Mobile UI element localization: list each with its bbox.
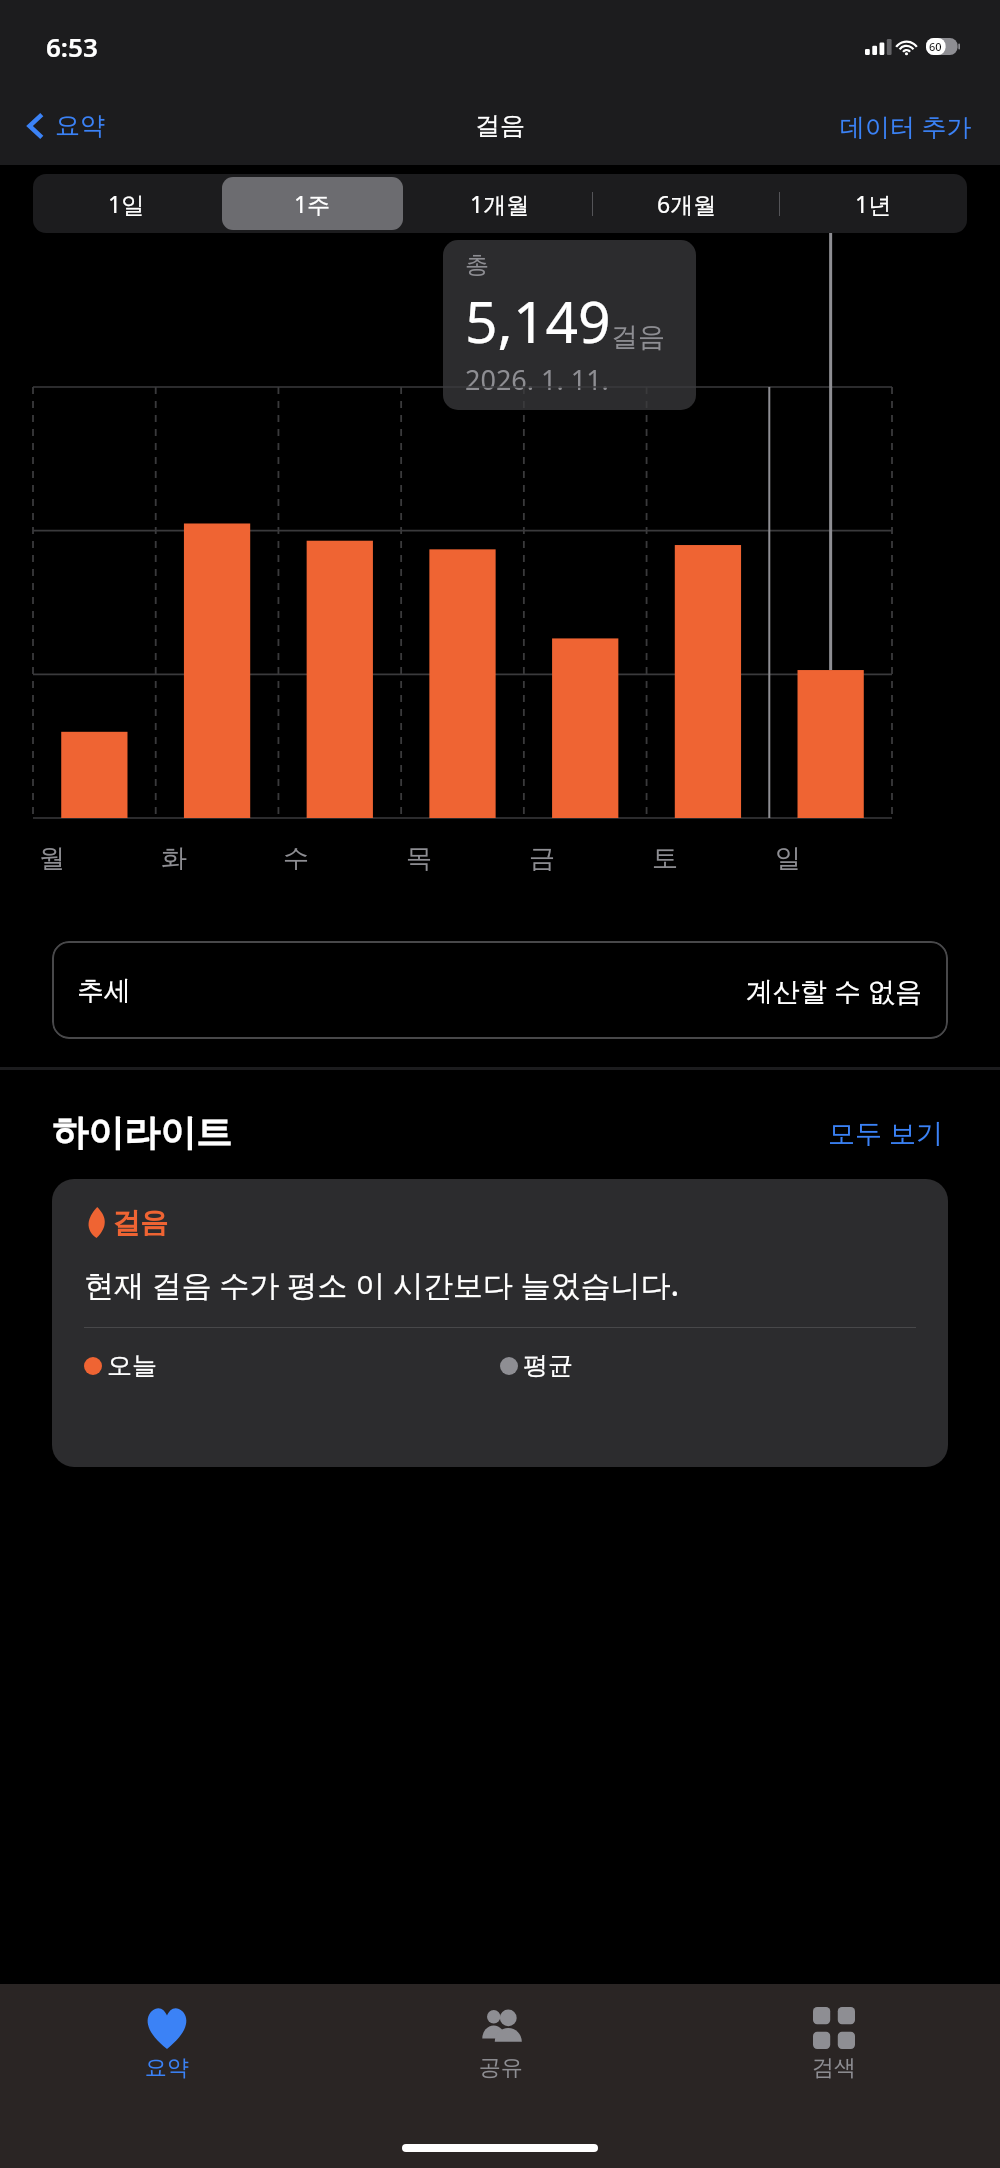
button[interactable]: 요약 [0, 2000, 334, 2088]
staticText: 1일 [108, 188, 145, 219]
staticText: 평균 [523, 1350, 573, 1381]
button[interactable]: 1주 [222, 177, 403, 230]
staticText: 수 [283, 842, 309, 875]
staticText: 요약 [145, 2054, 189, 2082]
staticText: 6개월 [657, 188, 717, 219]
button[interactable]: 추세 [52, 941, 948, 1039]
staticText: 공유 [479, 2054, 523, 2082]
button[interactable]: 검색 [667, 2000, 1000, 2088]
staticText: 계산할 수 없음 [746, 972, 923, 1009]
button[interactable]: 공유 [334, 2000, 667, 2088]
staticText: 일 [775, 842, 801, 875]
button[interactable]: 1일 [36, 177, 216, 230]
button[interactable]: 6개월 [596, 177, 777, 230]
staticText: 60 [929, 39, 942, 54]
staticText: 금 [529, 842, 555, 875]
staticText: 추세 [77, 974, 131, 1008]
staticText: 1개월 [470, 188, 530, 219]
staticText: 데이터 추가 [840, 109, 972, 143]
staticText: 총 [465, 250, 489, 280]
staticText: 월 [39, 842, 65, 875]
staticText: 목 [406, 842, 432, 875]
staticText: 걸음 [475, 110, 525, 141]
staticText: 오늘 [107, 1350, 157, 1381]
staticText: 검색 [812, 2054, 856, 2082]
button[interactable]: 1년 [783, 177, 964, 230]
staticText: 1주 [294, 188, 331, 219]
button[interactable]: 모두 보기 [824, 1110, 948, 1155]
staticText: 2026. 1. 11. [465, 361, 609, 398]
staticText: 5,149 [465, 282, 611, 360]
staticText: 모두 보기 [828, 1114, 944, 1151]
staticText: 현재 걸음 수가 평소 이 시간보다 늘었습니다. [84, 1264, 679, 1305]
staticText: 하이라이트 [52, 1110, 232, 1155]
staticText: 1년 [855, 188, 892, 219]
staticText: 6:53 [46, 29, 98, 64]
staticText: 토 [652, 842, 678, 875]
button[interactable]: 걸음 [52, 1179, 948, 1467]
staticText: 화 [161, 842, 187, 875]
button[interactable]: 데이터 추가 [834, 103, 978, 149]
button[interactable]: 요약 [22, 104, 111, 147]
staticText: 걸음 [611, 320, 665, 354]
staticText: 요약 [55, 110, 105, 141]
button[interactable]: 1개월 [409, 177, 590, 230]
staticText: 걸음 [112, 1205, 168, 1240]
